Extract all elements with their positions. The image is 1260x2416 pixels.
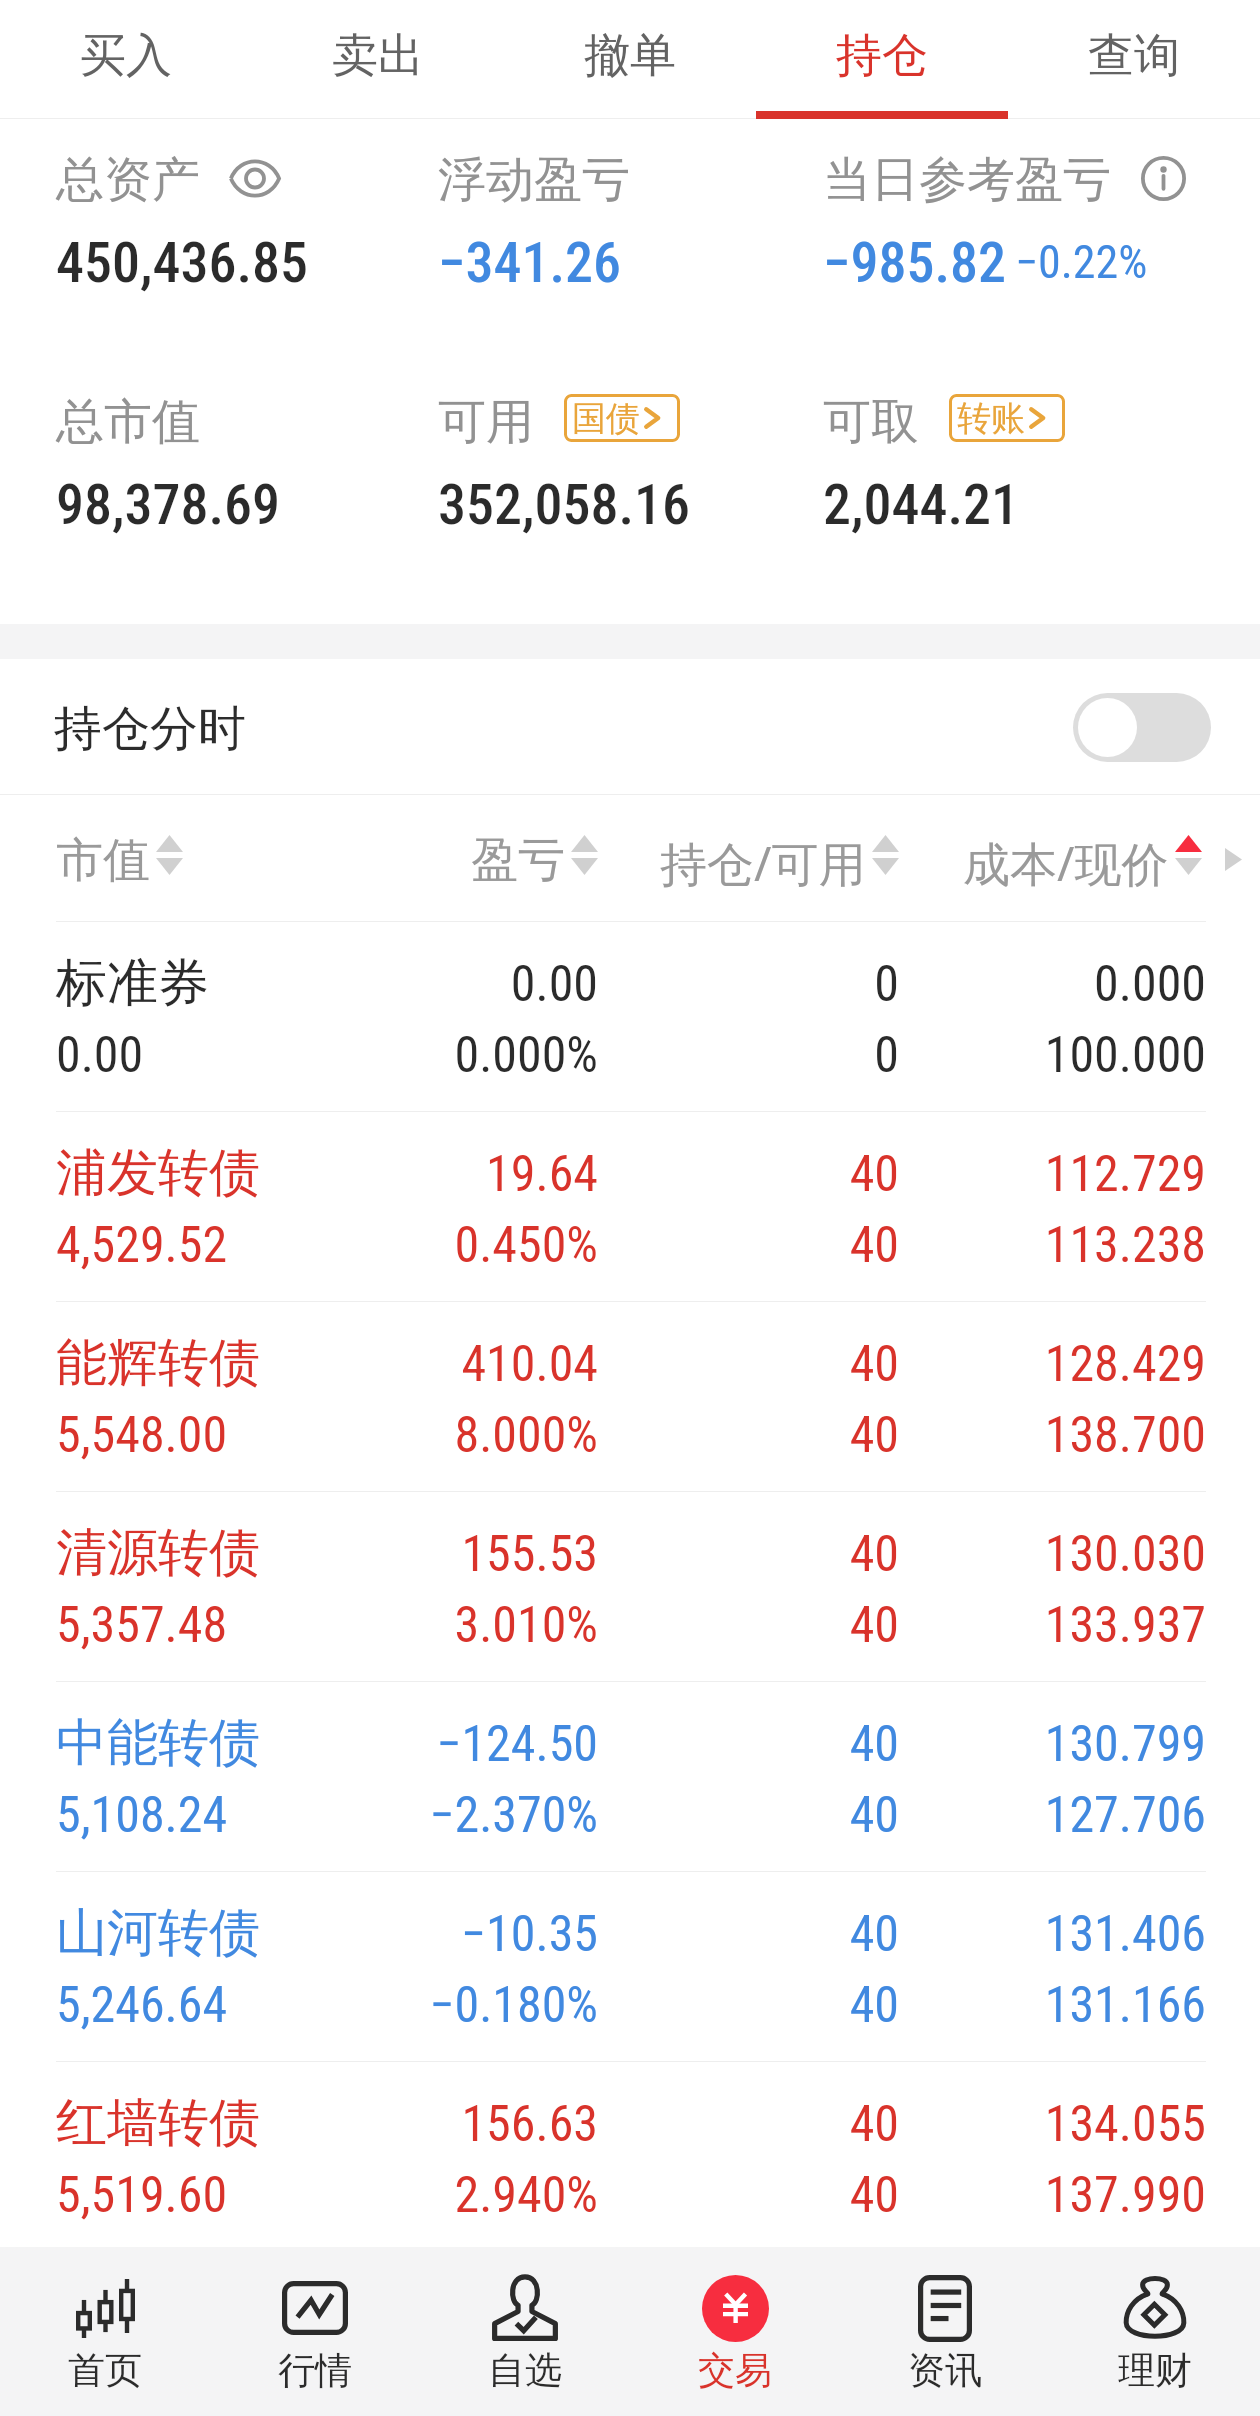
- staticText: 总资产: [56, 150, 200, 210]
- button[interactable]: 理财: [1050, 2247, 1260, 2416]
- staticText: 155.53: [0, 1525, 598, 1584]
- staticText: 40: [0, 1976, 899, 2035]
- staticText: 2,044.21: [823, 472, 1020, 538]
- button[interactable]: 转账: [949, 394, 1065, 442]
- staticText: 40: [0, 1525, 899, 1584]
- button[interactable]: 持仓: [756, 0, 1008, 119]
- staticText: 总市值: [56, 392, 200, 452]
- staticText: 买入: [80, 27, 172, 85]
- staticText: 红墙转债: [56, 2091, 260, 2155]
- staticText: 当日参考盈亏: [823, 150, 1111, 210]
- staticText: 0.00: [0, 955, 598, 1014]
- staticText: −341.26: [438, 230, 622, 296]
- button[interactable]: 买入: [0, 0, 252, 119]
- button[interactable]: 标准券: [0, 922, 1260, 1112]
- staticText: 40: [0, 1715, 899, 1774]
- staticText: 中能转债: [56, 1711, 260, 1775]
- staticText: −124.50: [0, 1715, 598, 1774]
- staticText: 5,548.00: [56, 1406, 228, 1465]
- staticText: 首页: [68, 2347, 142, 2394]
- staticText: 能辉转债: [56, 1331, 260, 1395]
- staticText: 40: [0, 1216, 899, 1275]
- button[interactable]: More columns: [1219, 843, 1255, 875]
- staticText: 查询: [1088, 27, 1180, 85]
- staticText: −0.22%: [1015, 235, 1148, 289]
- staticText: 40: [0, 2166, 899, 2225]
- staticText: 40: [0, 1786, 899, 1845]
- staticText: −0.180%: [0, 1976, 598, 2035]
- staticText: 2.940%: [0, 2166, 598, 2225]
- staticText: 5,519.60: [56, 2166, 228, 2225]
- staticText: 0.450%: [0, 1216, 598, 1275]
- staticText: 可取: [823, 392, 919, 452]
- staticText: 100.000: [0, 1026, 1206, 1085]
- staticText: 138.700: [0, 1406, 1206, 1465]
- button[interactable]: 卖出: [252, 0, 504, 119]
- staticText: 标准券: [56, 951, 209, 1015]
- staticText: 国债: [572, 397, 640, 440]
- button[interactable]: 查询: [1008, 0, 1260, 119]
- button[interactable]: 红墙转债: [0, 2062, 1260, 2252]
- staticText: 行情: [278, 2347, 352, 2394]
- button[interactable]: 行情: [210, 2247, 420, 2416]
- staticText: 131.166: [0, 1976, 1206, 2035]
- staticText: 133.937: [0, 1596, 1206, 1655]
- button[interactable]: 能辉转债: [0, 1302, 1260, 1492]
- button[interactable]: 撤单: [504, 0, 756, 119]
- button[interactable]: 中能转债: [0, 1682, 1260, 1872]
- button[interactable]: 浦发转债: [0, 1112, 1260, 1302]
- staticText: 转账: [957, 397, 1025, 440]
- staticText: 0.000: [0, 955, 1206, 1014]
- button[interactable]: 国债: [564, 394, 680, 442]
- staticText: 40: [0, 1596, 899, 1655]
- staticText: −985.82: [823, 230, 1007, 296]
- staticText: 持仓分时: [54, 699, 246, 759]
- staticText: 0.00: [56, 1026, 144, 1085]
- button[interactable]: 盈亏: [471, 831, 598, 890]
- staticText: 自选: [488, 2347, 562, 2394]
- staticText: 浮动盈亏: [438, 150, 630, 210]
- staticText: 卖出: [332, 27, 424, 85]
- staticText: 130.030: [0, 1525, 1206, 1584]
- button[interactable]: 成本/现价: [963, 831, 1202, 895]
- staticText: 40: [0, 1335, 899, 1394]
- staticText: 浦发转债: [56, 1141, 260, 1205]
- button[interactable]: 山河转债: [0, 1872, 1260, 2062]
- staticText: 盈亏: [471, 831, 565, 890]
- staticText: 交易: [698, 2347, 772, 2394]
- staticText: 113.238: [0, 1216, 1206, 1275]
- staticText: 134.055: [0, 2095, 1206, 2154]
- staticText: 成本/现价: [963, 831, 1169, 895]
- staticText: 山河转债: [56, 1901, 260, 1965]
- button[interactable]: 首页: [0, 2247, 210, 2416]
- staticText: 4,529.52: [56, 1216, 228, 1275]
- button[interactable]: 持仓/可用: [660, 831, 899, 895]
- staticText: 撤单: [584, 27, 676, 85]
- staticText: 理财: [1118, 2347, 1192, 2394]
- staticText: 市值: [56, 831, 150, 890]
- button[interactable]: 市值: [56, 831, 183, 890]
- staticText: 112.729: [0, 1145, 1206, 1204]
- button[interactable]: Toggle intraday chart: [1073, 693, 1211, 762]
- staticText: 352,058.16: [438, 472, 691, 538]
- button[interactable]: 自选: [420, 2247, 630, 2416]
- staticText: 5,357.48: [56, 1596, 228, 1655]
- staticText: 128.429: [0, 1335, 1206, 1394]
- button[interactable]: Information: [1141, 156, 1186, 201]
- staticText: 127.706: [0, 1786, 1206, 1845]
- staticText: 0.000%: [0, 1026, 598, 1085]
- button[interactable]: 资讯: [840, 2247, 1050, 2416]
- button[interactable]: 清源转债: [0, 1492, 1260, 1682]
- staticText: 450,436.85: [56, 230, 309, 296]
- staticText: 5,108.24: [56, 1786, 228, 1845]
- staticText: 8.000%: [0, 1406, 598, 1465]
- staticText: 资讯: [908, 2347, 982, 2394]
- button[interactable]: Trade: [630, 2247, 840, 2416]
- staticText: 131.406: [0, 1905, 1206, 1964]
- staticText: 持仓: [836, 27, 928, 85]
- staticText: 19.64: [0, 1145, 598, 1204]
- staticText: 可用: [438, 392, 534, 452]
- staticText: 持仓/可用: [660, 831, 866, 895]
- button[interactable]: Show or hide assets: [229, 158, 285, 199]
- staticText: −2.370%: [0, 1786, 598, 1845]
